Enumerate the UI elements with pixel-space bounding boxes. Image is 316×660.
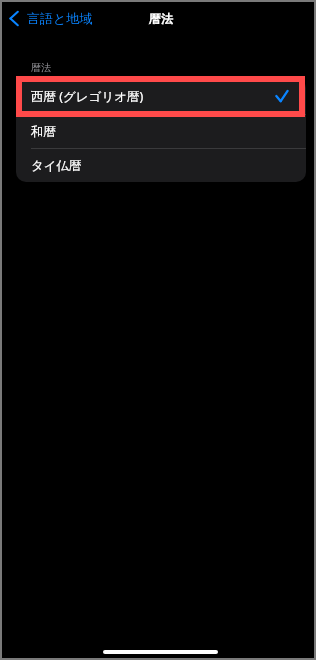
staticText: 西暦 (グレゴリオ暦) [31, 88, 144, 105]
staticText: 暦法 [31, 61, 51, 74]
button[interactable]: 戻る [7, 6, 95, 30]
staticText: タイ仏暦 [31, 158, 82, 174]
other: 戻る [9, 11, 19, 26]
staticText: 和暦 [31, 124, 56, 140]
button[interactable]: 西暦 (グレゴリオ暦) [16, 78, 306, 114]
other: 選択中 [275, 90, 288, 102]
button[interactable]: タイ仏暦 [16, 149, 306, 182]
button[interactable]: 和暦 [16, 115, 306, 148]
staticText: 暦法 [149, 11, 173, 26]
staticText: 言語と地域 [27, 10, 93, 26]
